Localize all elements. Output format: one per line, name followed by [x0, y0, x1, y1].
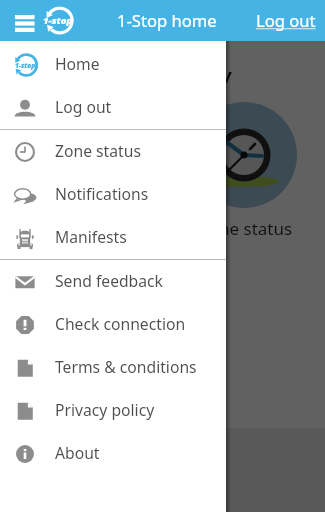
staticText: Zone status: [55, 140, 141, 161]
button[interactable]: Log out: [248, 3, 325, 38]
staticText: Manifests: [55, 226, 127, 247]
button[interactable]: Notifications: [0, 173, 226, 216]
button[interactable]: 1-stop: [0, 43, 226, 86]
staticText: 1-Stop home: [117, 9, 217, 32]
button[interactable]: Log out: [0, 86, 226, 129]
button[interactable]: Privacy policy: [0, 389, 226, 432]
staticText: Home: [55, 53, 100, 74]
button[interactable]: Send feedback: [0, 260, 226, 303]
staticText: About: [55, 442, 100, 463]
staticText: Log out: [256, 9, 316, 32]
staticText: Log out: [55, 96, 112, 117]
button[interactable]: Zone status: [0, 130, 226, 173]
button[interactable]: Check connection: [0, 303, 226, 346]
staticText: Check connection: [55, 313, 186, 334]
staticText: 1-stop: [43, 14, 73, 27]
staticText: Welcome, Andrew: [72, 63, 231, 89]
button[interactable]: Terms & conditions: [0, 346, 226, 389]
staticText: 1-stop: [15, 61, 36, 70]
staticText: Notifications: [55, 183, 149, 204]
staticText: Zone status: [199, 217, 293, 240]
button[interactable]: Manifests: [0, 216, 226, 259]
staticText: Privacy policy: [55, 399, 155, 420]
button[interactable]: About: [0, 432, 226, 475]
staticText: Terms & conditions: [55, 356, 197, 377]
button[interactable]: Open navigation drawer: [0, 0, 48, 41]
staticText: Send feedback: [55, 270, 163, 291]
